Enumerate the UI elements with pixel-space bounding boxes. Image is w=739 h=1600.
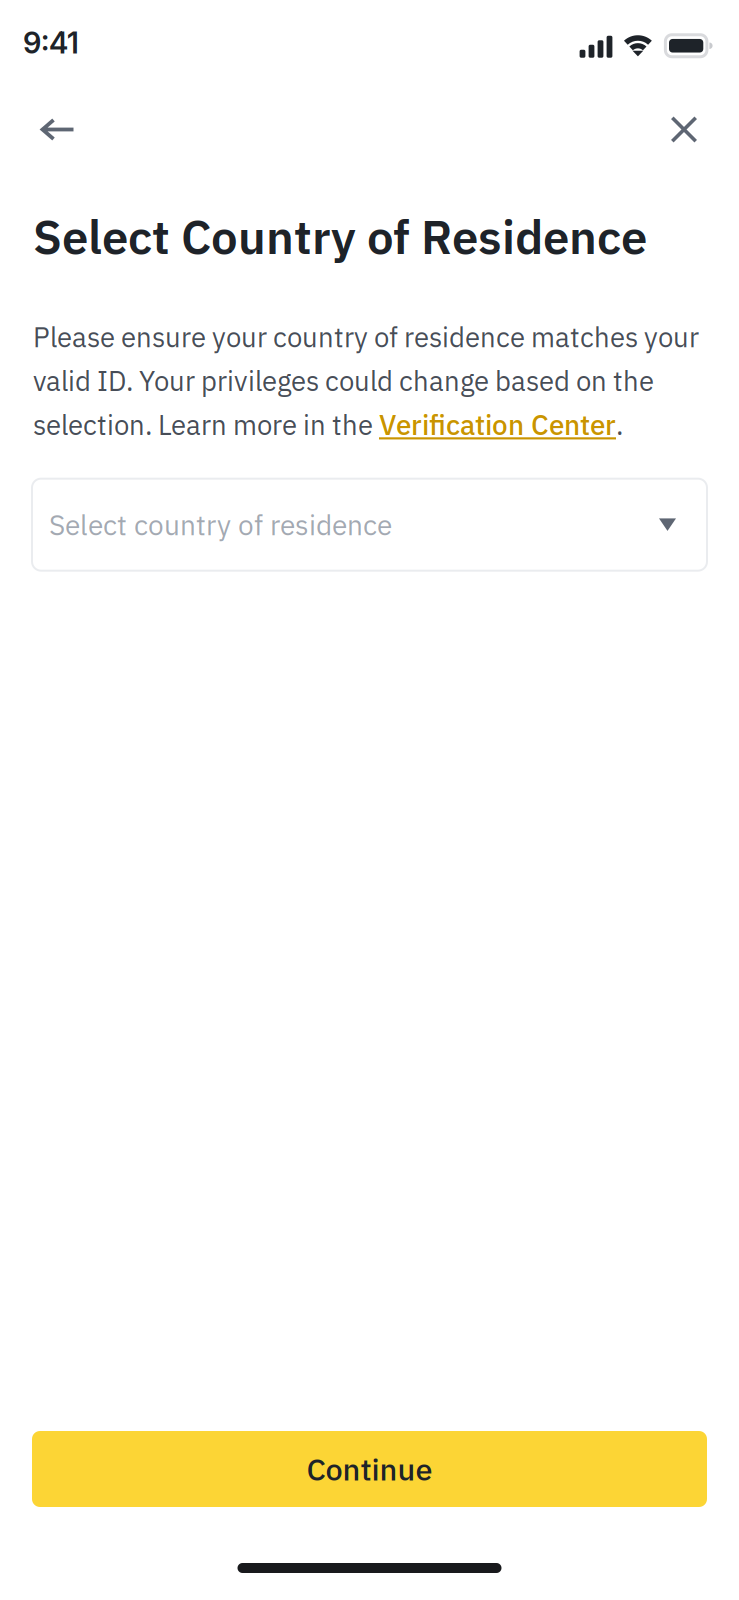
button[interactable]: Back xyxy=(23,92,93,166)
staticText: Select country of residence xyxy=(49,506,392,543)
staticText: Select Country of Residence xyxy=(33,205,647,267)
staticText: Continue xyxy=(306,1449,432,1489)
button[interactable]: Select country of residence xyxy=(32,479,707,571)
staticText: Verification Center xyxy=(379,406,616,443)
staticText: 9:41 xyxy=(23,25,79,60)
staticText: . xyxy=(616,407,623,442)
staticText: selection. Learn more in the xyxy=(33,407,379,442)
button[interactable]: Continue xyxy=(32,1431,707,1507)
staticText: valid ID. Your privileges could change b… xyxy=(33,363,654,398)
button[interactable]: Close xyxy=(649,92,719,166)
staticText: Please ensure your country of residence … xyxy=(33,319,699,355)
